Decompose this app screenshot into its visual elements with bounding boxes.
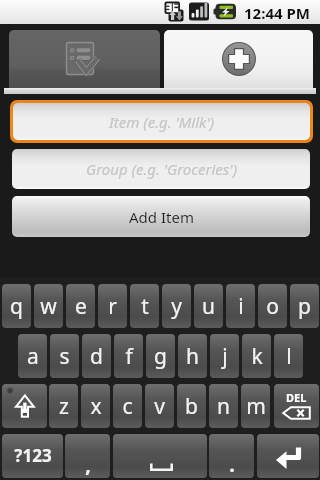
staticText: m	[246, 392, 266, 421]
button[interactable]: n	[209, 384, 238, 428]
button[interactable]: .	[209, 434, 254, 478]
staticText: x	[90, 392, 102, 421]
button[interactable]: e	[66, 284, 95, 328]
staticText: 12:44 PM	[244, 3, 310, 23]
button[interactable]: q	[2, 284, 31, 328]
button[interactable]: m	[241, 384, 270, 428]
button[interactable]: Add item	[164, 30, 313, 88]
button[interactable]: r	[98, 284, 127, 328]
button[interactable]: s	[50, 334, 79, 378]
staticText: z	[59, 392, 69, 421]
button[interactable]: Group (e.g. 'Groceries')	[12, 149, 310, 189]
button[interactable]: g	[146, 334, 175, 378]
button[interactable]: t	[130, 284, 159, 328]
staticText: Group (e.g. 'Groceries')	[86, 159, 237, 179]
button[interactable]: l	[274, 334, 303, 378]
button[interactable]: v	[145, 384, 174, 428]
staticText: s	[59, 342, 70, 371]
staticText: a	[27, 342, 39, 371]
button[interactable]: Item (e.g. 'Milk')	[13, 103, 310, 140]
button[interactable]: b	[177, 384, 206, 428]
button[interactable]: p	[290, 284, 319, 328]
staticText: t	[141, 292, 149, 321]
staticText: e	[75, 292, 87, 321]
staticText: ?123	[14, 444, 52, 467]
button[interactable]: a	[18, 334, 47, 378]
staticText: i	[238, 292, 244, 321]
staticText: u	[202, 292, 215, 321]
button[interactable]: c	[113, 384, 142, 428]
staticText: c	[122, 392, 133, 421]
button[interactable]: Shopping list	[9, 30, 160, 88]
button[interactable]: y	[162, 284, 191, 328]
staticText: DEL	[286, 390, 307, 405]
staticText: b	[185, 392, 198, 421]
staticText: h	[186, 342, 199, 371]
staticText: r	[108, 292, 117, 321]
staticText: ,	[85, 451, 91, 478]
staticText: Item (e.g. 'Milk')	[109, 112, 215, 132]
staticText: o	[266, 292, 279, 321]
button[interactable]: u	[194, 284, 223, 328]
button[interactable]: z	[49, 384, 78, 428]
button[interactable]: ,	[65, 434, 110, 478]
button[interactable]: d	[82, 334, 111, 378]
button[interactable]: Add Item	[12, 196, 310, 237]
button[interactable]: j	[210, 334, 239, 378]
staticText: f	[125, 342, 133, 371]
button[interactable]: Enter	[257, 434, 319, 478]
button[interactable]: k	[242, 334, 271, 378]
staticText: w	[40, 292, 57, 321]
button[interactable]: ?123	[2, 434, 63, 478]
staticText: j	[222, 342, 228, 371]
button[interactable]: h	[178, 334, 207, 378]
button[interactable]: x	[81, 384, 110, 428]
staticText: n	[217, 392, 230, 421]
staticText: v	[154, 392, 165, 421]
staticText: Add Item	[129, 207, 194, 227]
button[interactable]: f	[114, 334, 143, 378]
staticText: .	[229, 451, 235, 478]
staticText: d	[90, 342, 103, 371]
button[interactable]: w	[34, 284, 63, 328]
staticText: q	[10, 292, 23, 321]
staticText: l	[286, 342, 292, 371]
button[interactable]: Shift	[2, 384, 47, 428]
button[interactable]: i	[226, 284, 255, 328]
button[interactable]: Space	[113, 434, 207, 478]
staticText: k	[251, 342, 263, 371]
staticText: g	[154, 342, 167, 371]
button[interactable]: Delete	[274, 384, 319, 428]
staticText: p	[298, 292, 311, 321]
button[interactable]: o	[258, 284, 287, 328]
staticText: y	[171, 292, 182, 321]
